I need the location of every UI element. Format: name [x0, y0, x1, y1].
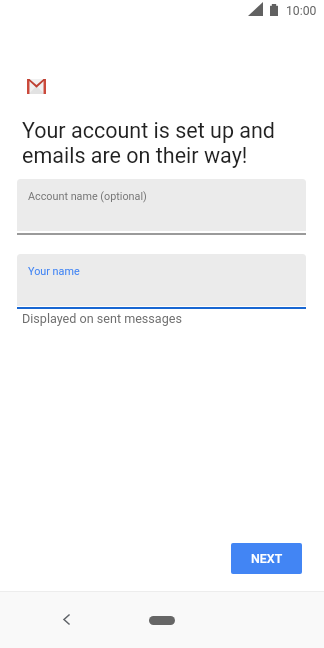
button[interactable]: Account name (optional) — [17, 179, 306, 234]
button[interactable]: Back — [52, 605, 81, 634]
staticText: Your account is set up and emails are on… — [22, 118, 302, 169]
staticText: Your name — [28, 265, 80, 278]
staticText: NEXT — [251, 551, 283, 566]
button[interactable]: Your name — [17, 254, 306, 309]
staticText: Displayed on sent messages — [22, 311, 182, 326]
staticText: 10:00 — [286, 4, 317, 18]
button[interactable]: Home — [149, 616, 175, 625]
button[interactable]: NEXT — [231, 543, 302, 574]
staticText: Account name (optional) — [28, 190, 147, 203]
